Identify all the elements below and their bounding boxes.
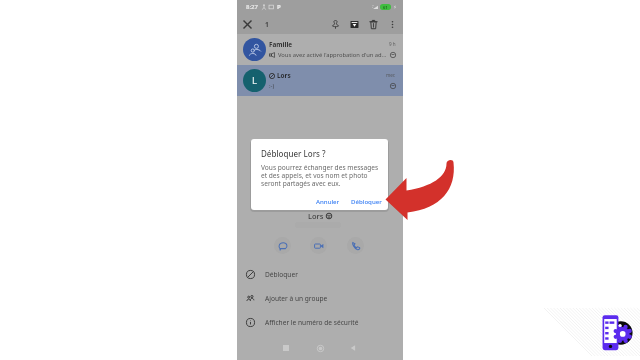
- staticText: Débloquer Lors ?: [261, 148, 326, 159]
- staticText: mer.: [386, 72, 396, 78]
- staticText: 1: [265, 20, 269, 29]
- staticText: Lors: [308, 211, 324, 221]
- button[interactable]: Annuler: [313, 195, 343, 207]
- staticText: Afficher le numéro de sécurité: [265, 318, 359, 327]
- button[interactable]: Call: [347, 237, 364, 254]
- button[interactable]: Recents: [278, 340, 294, 356]
- staticText: Annuler: [316, 197, 340, 205]
- staticText: Ajouter à un groupe: [265, 294, 328, 303]
- staticText: :-): [269, 82, 275, 90]
- button[interactable]: Close: [237, 14, 257, 34]
- button[interactable]: Delete: [364, 15, 383, 34]
- staticText: 9 h: [389, 41, 396, 47]
- button[interactable]: Débloquer: [237, 262, 403, 286]
- button[interactable]: L: [237, 65, 403, 96]
- button[interactable]: Afficher le numéro de sécurité: [237, 310, 403, 334]
- button[interactable]: Home: [312, 340, 328, 356]
- button[interactable]: More options: [383, 15, 402, 34]
- button[interactable]: Ajouter à un groupe: [237, 286, 403, 310]
- staticText: Débloquer: [351, 197, 382, 205]
- button[interactable]: Video call: [310, 237, 327, 254]
- button[interactable]: Pin: [326, 15, 345, 34]
- staticText: L: [252, 74, 257, 87]
- button[interactable]: Back: [345, 340, 361, 356]
- staticText: 61: [383, 5, 388, 10]
- staticText: Lors: [277, 71, 291, 80]
- staticText: Débloquer: [265, 270, 298, 279]
- staticText: Famille: [269, 40, 293, 49]
- staticText: 8:27: [246, 3, 258, 11]
- button[interactable]: Débloquer: [348, 195, 385, 207]
- staticText: Vous avez activé l'approbation d'un adm.…: [278, 51, 387, 59]
- staticText: P: [277, 3, 281, 11]
- button[interactable]: Message: [274, 237, 291, 254]
- staticText: Vous pourrez échanger des messages et de…: [261, 163, 380, 188]
- button[interactable]: Archive: [345, 15, 364, 34]
- button[interactable]: Famille: [237, 34, 403, 65]
